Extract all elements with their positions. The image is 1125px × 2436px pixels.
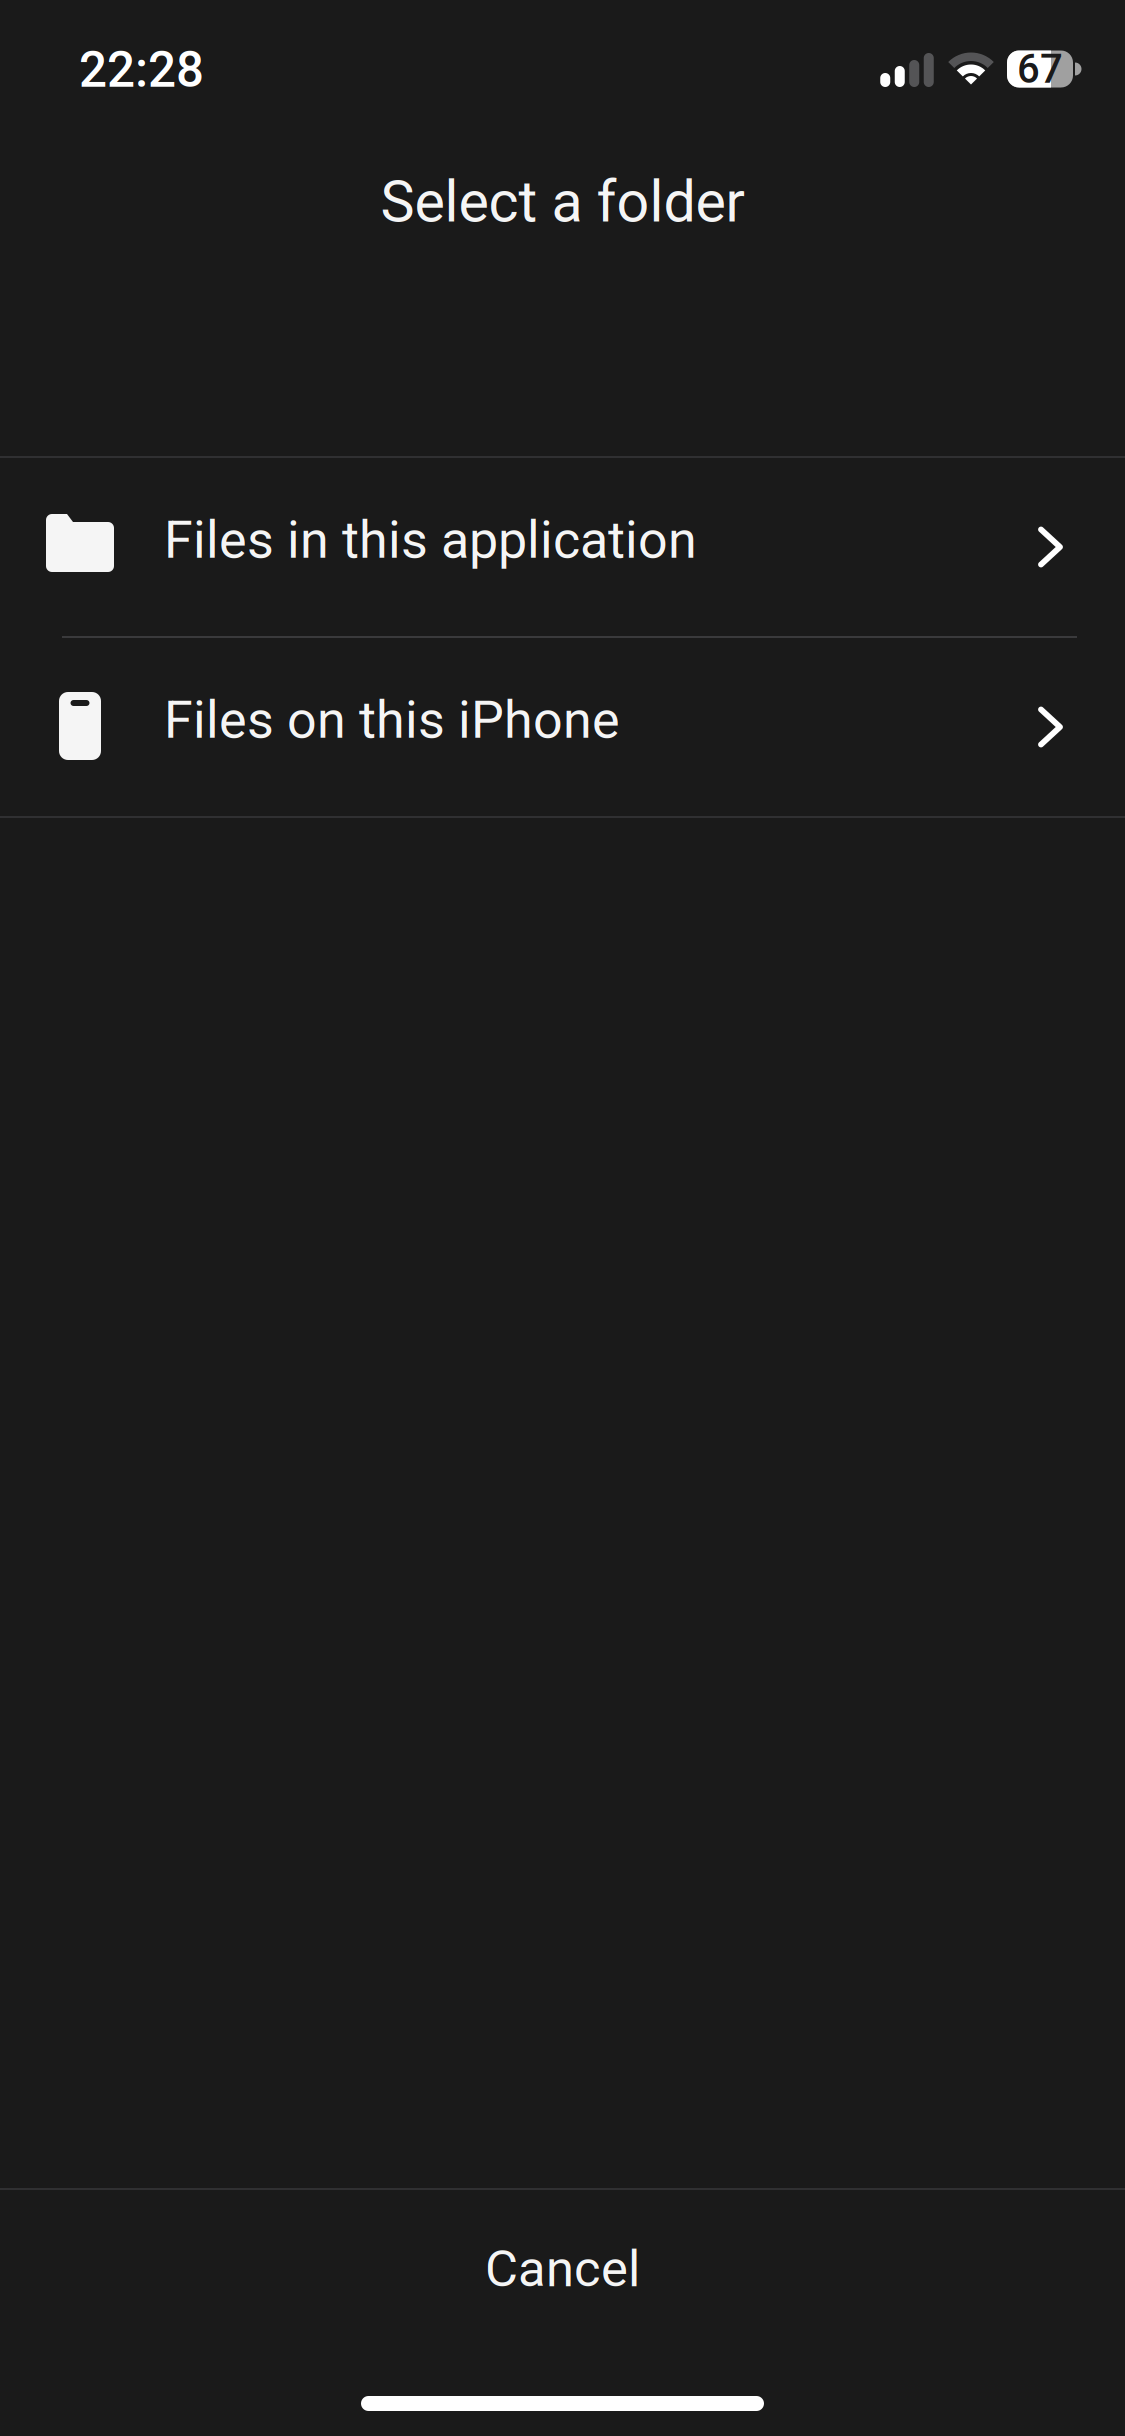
staticText: Files in this application bbox=[164, 509, 697, 570]
button[interactable]: Cancel bbox=[0, 2190, 1125, 2348]
staticText: Files on this iPhone bbox=[164, 689, 620, 750]
button[interactable]: Files in this application bbox=[0, 458, 1125, 636]
staticText: 22:28 bbox=[79, 41, 204, 99]
staticText: Cancel bbox=[485, 2239, 640, 2299]
button[interactable]: Files on this iPhone bbox=[0, 638, 1125, 816]
staticText: 67 bbox=[1017, 46, 1063, 92]
staticText: Select a folder bbox=[380, 168, 744, 236]
